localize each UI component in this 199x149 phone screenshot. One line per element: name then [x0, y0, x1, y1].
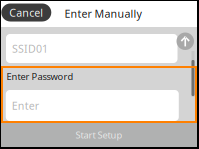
- staticText: SSID01: [12, 41, 48, 56]
- staticText: Enter Manually: [64, 6, 141, 21]
- staticText: Enter: [12, 98, 39, 113]
- staticText: Enter Password: [6, 70, 73, 83]
- staticText: Cancel: [9, 5, 43, 20]
- button[interactable]: Start Setup: [1, 123, 197, 147]
- button[interactable]: Cancel: [1, 3, 51, 21]
- button[interactable]: Enter: [6, 90, 179, 121]
- staticText: Start Setup: [75, 129, 122, 141]
- button[interactable]: SSID01: [6, 34, 177, 63]
- button[interactable]: Scroll to top: [176, 32, 194, 50]
